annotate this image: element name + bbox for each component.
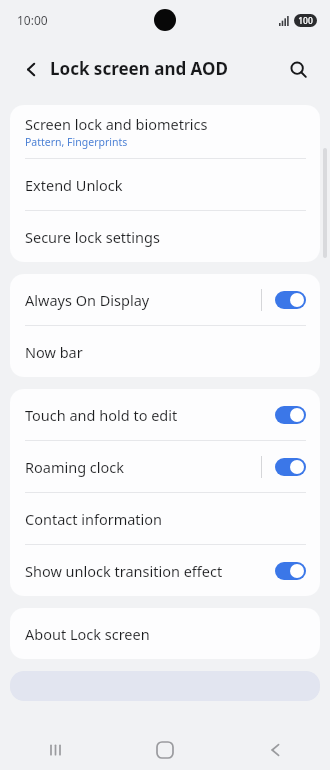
- staticText: Pattern, Fingerprints: [25, 135, 128, 149]
- button[interactable]: Back: [17, 55, 45, 83]
- button[interactable]: Touch and hold to edit: [10, 389, 320, 440]
- button[interactable]: Touch and hold to edit: [275, 406, 306, 424]
- staticText: Extend Unlock: [25, 175, 123, 195]
- button[interactable]: Show unlock transition effect: [275, 562, 306, 580]
- button[interactable]: Always On Display: [275, 291, 306, 309]
- button[interactable]: Search: [284, 55, 312, 83]
- staticText: Touch and hold to edit: [25, 405, 178, 425]
- staticText: Secure lock settings: [25, 227, 160, 247]
- staticText: Lock screen and AOD: [50, 57, 228, 80]
- button[interactable]: Back: [220, 730, 330, 770]
- staticText: 100: [298, 15, 313, 27]
- staticText: 10:00: [17, 12, 48, 28]
- button[interactable]: Always On Display: [10, 274, 320, 325]
- button[interactable]: Contact information: [10, 493, 320, 544]
- staticText: Show unlock transition effect: [25, 561, 223, 581]
- button[interactable]: Extend Unlock: [10, 159, 320, 210]
- staticText: Screen lock and biometrics: [25, 114, 208, 134]
- button[interactable]: Roaming clock: [275, 458, 306, 476]
- staticText: Contact information: [25, 509, 163, 529]
- staticText: Roaming clock: [25, 457, 125, 477]
- staticText: Now bar: [25, 342, 83, 362]
- button[interactable]: Home: [110, 730, 220, 770]
- button[interactable]: About Lock screen: [10, 608, 320, 659]
- button[interactable]: Recents: [0, 730, 110, 770]
- button[interactable]: Roaming clock: [10, 441, 320, 492]
- button[interactable]: Now bar: [10, 326, 320, 377]
- staticText: Always On Display: [25, 290, 150, 310]
- staticText: About Lock screen: [25, 624, 150, 644]
- button[interactable]: Screen lock and biometrics: [10, 105, 320, 158]
- button[interactable]: Secure lock settings: [10, 211, 320, 262]
- button[interactable]: Show unlock transition effect: [10, 545, 320, 596]
